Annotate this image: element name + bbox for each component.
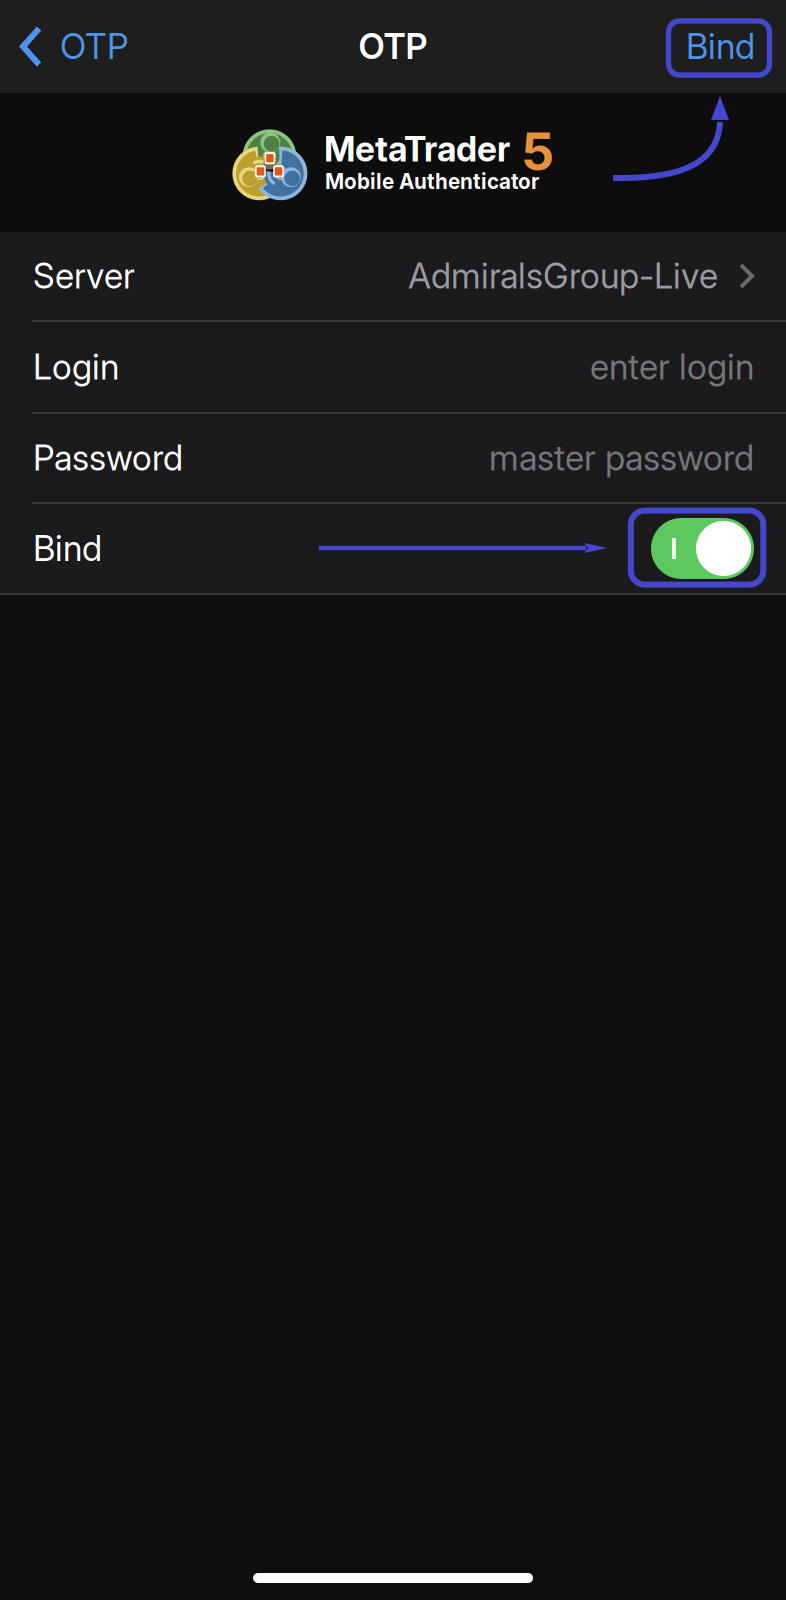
staticText: OTP [358, 25, 427, 67]
button[interactable]: Password [0, 414, 786, 502]
staticText: Bind [33, 527, 102, 569]
staticText: 5 [521, 120, 554, 183]
button[interactable]: Login [0, 322, 786, 412]
staticText: AdmiralsGroup-Live [408, 255, 718, 297]
staticText: Login [33, 346, 119, 388]
button[interactable]: Server [0, 232, 786, 320]
staticText: Server [33, 255, 135, 297]
button[interactable]: OTP [0, 0, 143, 93]
staticText: Bind [686, 25, 755, 67]
button[interactable]: Bind [673, 0, 786, 93]
button[interactable]: Bind toggle, on [651, 518, 754, 579]
staticText: enter login [590, 346, 754, 388]
staticText: Password [33, 437, 183, 479]
staticText: MetaTrader [324, 128, 510, 170]
staticText: master password [489, 437, 754, 479]
staticText: OTP [60, 25, 129, 67]
staticText: Mobile Authenticator [325, 169, 539, 194]
